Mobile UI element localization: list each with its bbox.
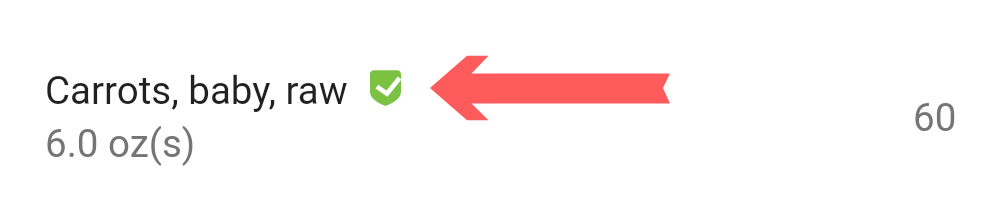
button[interactable]: Verified food entry xyxy=(370,70,401,106)
button[interactable]: Carrots, baby, raw xyxy=(0,0,1000,206)
staticText: 60 xyxy=(913,95,957,140)
staticText: Carrots, baby, raw xyxy=(45,68,348,113)
button[interactable]: 60 xyxy=(913,95,957,140)
other: Points at the verified badge xyxy=(428,54,674,122)
staticText: 6.0 oz(s) xyxy=(45,121,196,166)
